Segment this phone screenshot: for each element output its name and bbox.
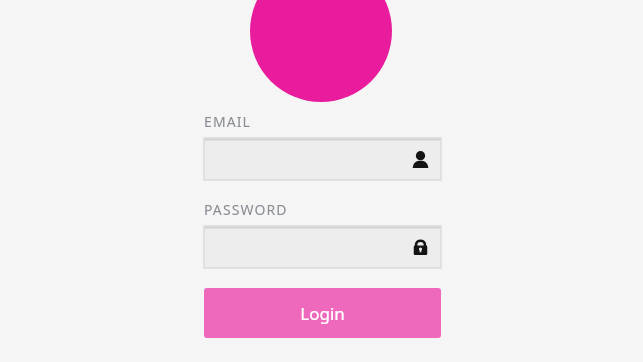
staticText: EMAIL	[204, 112, 252, 131]
button[interactable]: Password input field	[204, 226, 441, 268]
staticText: Login	[300, 302, 345, 325]
button[interactable]: Login	[204, 288, 441, 338]
staticText: PASSWORD	[204, 200, 288, 219]
button[interactable]: Email input field	[204, 138, 441, 180]
